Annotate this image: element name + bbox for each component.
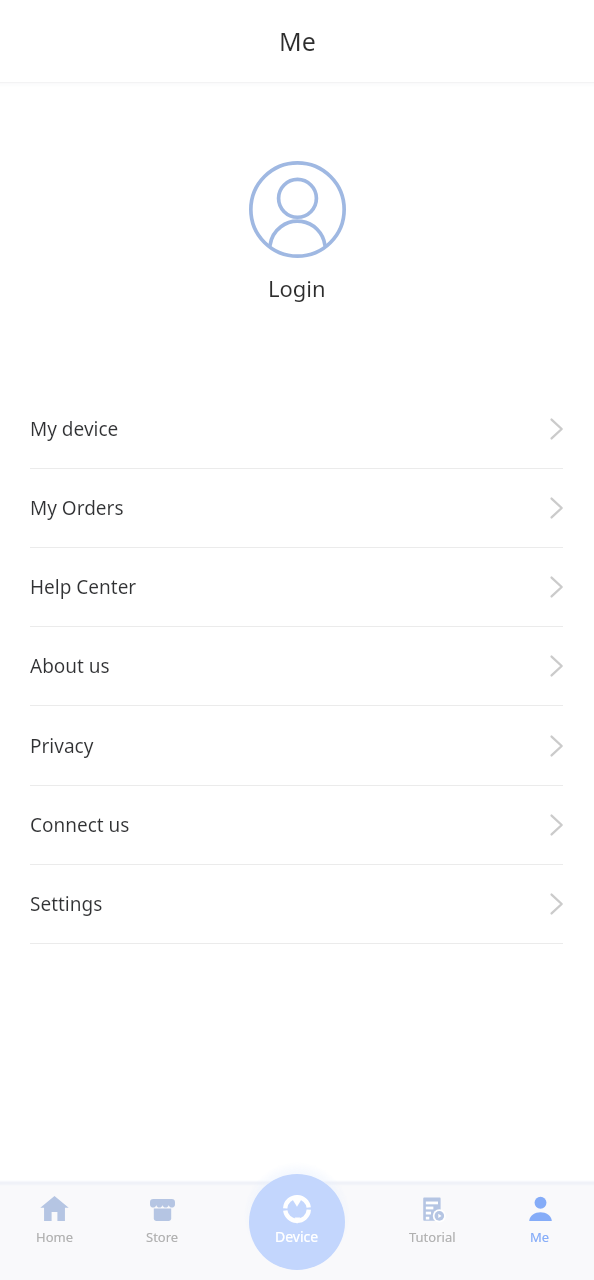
staticText: Store [146, 1228, 179, 1246]
button[interactable]: Settings [30, 865, 563, 943]
staticText: My device [30, 416, 119, 442]
button[interactable]: Me [486, 1184, 594, 1246]
button[interactable]: Device [249, 1174, 345, 1270]
staticText: Settings [30, 891, 103, 917]
staticText: Tutorial [409, 1228, 456, 1246]
button[interactable]: Store [108, 1184, 217, 1246]
button[interactable]: Login [268, 273, 326, 303]
button[interactable]: Help Center [30, 548, 563, 626]
button[interactable]: Tutorial [379, 1184, 486, 1246]
staticText: Home [36, 1228, 73, 1246]
other: Profile avatar [249, 161, 346, 258]
staticText: Privacy [30, 733, 94, 759]
button[interactable]: Privacy [30, 706, 563, 785]
staticText: My Orders [30, 495, 124, 521]
button[interactable]: My device [30, 390, 563, 468]
staticText: Me [530, 1228, 550, 1246]
staticText: Me [279, 24, 316, 58]
staticText: Device [275, 1227, 319, 1246]
button[interactable]: Connect us [30, 786, 563, 864]
staticText: Login [268, 273, 326, 303]
staticText: Help Center [30, 574, 137, 600]
staticText: Connect us [30, 812, 130, 838]
staticText: About us [30, 653, 110, 679]
button[interactable]: About us [30, 627, 563, 705]
button[interactable]: My Orders [30, 469, 563, 547]
button[interactable]: Home [0, 1184, 108, 1246]
